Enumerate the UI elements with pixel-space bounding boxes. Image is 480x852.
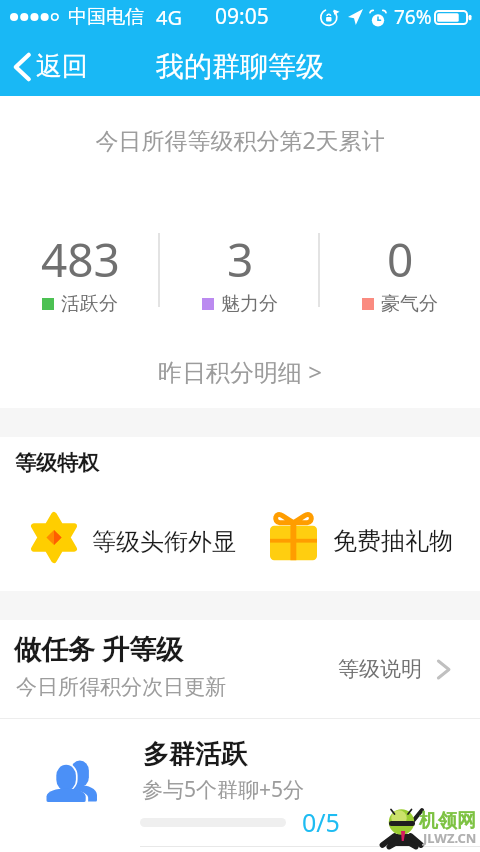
staticText: 0/5 [302, 805, 340, 839]
staticText: 09:05 [215, 2, 269, 31]
staticText: 做任务 升等级 [14, 630, 184, 667]
staticText: 3 [227, 228, 254, 291]
staticText: 返回 [36, 50, 88, 83]
staticText: 今日所得等级积分第2天累计 [0, 124, 480, 155]
staticText: 483 [41, 228, 120, 291]
staticText: 等级特权 [15, 450, 99, 476]
staticText: 免费抽礼物 [333, 526, 453, 556]
staticText: 76% [394, 4, 432, 30]
button[interactable]: 多群活跃 [0, 719, 480, 852]
staticText: 等级说明 [338, 656, 422, 682]
staticText: 4G [156, 4, 182, 31]
button[interactable]: 等级说明 [338, 656, 452, 682]
staticText: 机领网 [419, 809, 476, 833]
staticText: 参与5个群聊+5分 [142, 775, 305, 804]
button[interactable]: 返回 [12, 50, 88, 83]
staticText: JLWZ.CN [423, 829, 477, 847]
staticText: 魅力分 [221, 292, 278, 316]
staticText: 中国电信 [68, 5, 144, 29]
staticText: 豪气分 [381, 292, 438, 316]
button[interactable]: 昨日积分明细 > [0, 348, 480, 394]
button[interactable]: 免费抽礼物 [270, 511, 453, 562]
staticText: 活跃分 [61, 292, 118, 316]
staticText: 多群活跃 [143, 738, 247, 771]
button[interactable]: 等级头衔外显 [31, 512, 236, 563]
staticText: 今日所得积分次日更新 [16, 674, 226, 700]
staticText: 0 [387, 228, 414, 291]
staticText: 等级头衔外显 [92, 527, 236, 557]
staticText: 昨日积分明细 > [158, 355, 322, 388]
staticText: 我的群聊等级 [156, 49, 324, 84]
